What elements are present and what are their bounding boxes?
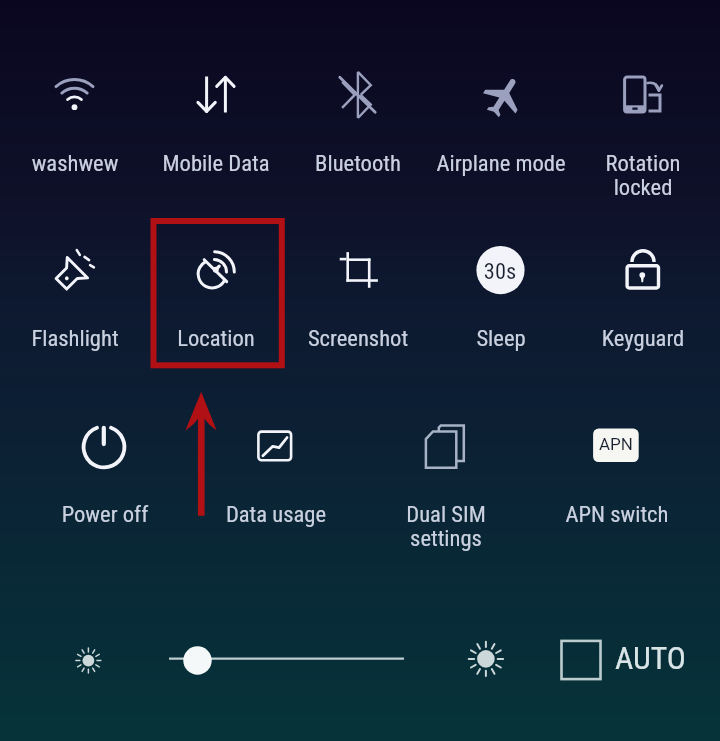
button[interactable]: Power off bbox=[19, 372, 190, 546]
staticText: Sleep bbox=[435, 325, 567, 351]
button[interactable]: Brightness bbox=[40, 628, 520, 694]
staticText: washwew bbox=[9, 150, 141, 176]
staticText: Flashlight bbox=[9, 325, 141, 351]
button[interactable]: Sleep bbox=[430, 196, 572, 370]
button[interactable]: Keyguard bbox=[572, 196, 714, 370]
button[interactable]: AUTO bbox=[552, 632, 696, 690]
staticText: Data usage bbox=[210, 501, 342, 527]
staticText: Keyguard bbox=[577, 325, 709, 351]
button[interactable]: washwew bbox=[4, 21, 146, 195]
staticText: AUTO bbox=[615, 640, 686, 677]
staticText: Airplane mode bbox=[435, 150, 567, 176]
button[interactable]: Location bbox=[145, 196, 287, 370]
staticText: Dual SIM settings bbox=[380, 501, 512, 551]
button[interactable]: APN switch bbox=[531, 372, 702, 546]
button[interactable]: Airplane mode bbox=[430, 21, 572, 195]
staticText: Bluetooth bbox=[292, 150, 424, 176]
staticText: Screenshot bbox=[292, 325, 424, 351]
staticText: Mobile Data bbox=[150, 150, 282, 176]
staticText: APN bbox=[593, 434, 639, 454]
staticText: Power off bbox=[39, 501, 171, 527]
button[interactable]: Screenshot bbox=[287, 196, 429, 370]
staticText: Rotation locked bbox=[577, 150, 709, 200]
button[interactable]: Bluetooth bbox=[287, 21, 429, 195]
button[interactable]: Mobile Data bbox=[145, 21, 287, 195]
button[interactable]: Data usage bbox=[190, 372, 361, 546]
button[interactable]: Dual SIM settings bbox=[360, 372, 531, 546]
staticText: APN switch bbox=[551, 501, 683, 527]
staticText: 30s bbox=[476, 258, 524, 282]
button[interactable]: Flashlight bbox=[4, 196, 146, 370]
staticText: Location bbox=[150, 325, 282, 351]
button[interactable]: Rotation locked bbox=[572, 21, 714, 195]
